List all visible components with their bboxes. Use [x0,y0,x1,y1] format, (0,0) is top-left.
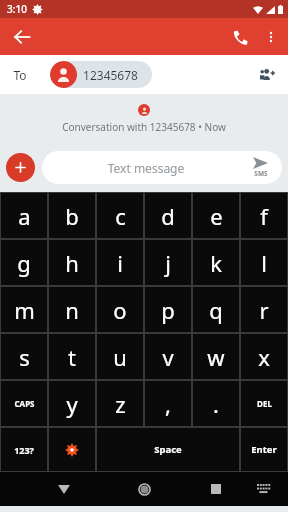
button[interactable]: Recent apps [200,473,232,505]
staticText: Text message [54,160,238,176]
button[interactable]: y [49,381,95,426]
button[interactable]: Switch keyboard [250,475,278,503]
staticText: b [65,201,79,231]
button[interactable]: g [1,240,47,285]
button[interactable]: x [241,334,287,379]
button[interactable]: d [145,193,191,238]
staticText: n [65,295,79,325]
staticText: w [207,342,225,372]
staticText: SMS [254,169,268,178]
staticText: m [14,295,35,325]
button[interactable]: Space [97,428,239,471]
button[interactable]: 12345678 [50,61,152,88]
button[interactable]: More options [256,22,286,52]
button[interactable]: h [49,240,95,285]
staticText: , [165,389,171,419]
button[interactable]: Attach [6,153,35,182]
button[interactable]: i [97,240,143,285]
staticText: s [19,342,30,372]
staticText: 123? [14,444,34,456]
staticText: k [210,248,222,278]
button[interactable]: Enter [241,428,287,471]
staticText: q [209,295,223,325]
button[interactable]: v [145,334,191,379]
staticText: CAPS [14,398,35,409]
staticText: . [213,389,219,419]
staticText: x [258,342,270,372]
button[interactable]: Keyboard settings [49,428,95,471]
button[interactable]: t [49,334,95,379]
button[interactable]: Back [6,21,38,53]
button[interactable]: Hide keyboard [48,473,80,505]
button[interactable]: b [49,193,95,238]
button[interactable]: Add people [252,60,282,90]
button[interactable]: a [1,193,47,238]
staticText: o [113,295,127,325]
button[interactable]: l [241,240,287,285]
staticText: 12345678 [83,67,138,83]
staticText: Enter [251,443,277,456]
staticText: c [115,201,126,231]
button[interactable]: CAPS [1,381,47,426]
button[interactable]: Call [224,21,256,53]
button[interactable]: Send SMS [238,151,282,184]
staticText: e [210,201,223,231]
button[interactable]: w [193,334,239,379]
staticText: p [161,295,175,325]
staticText: Conversation with 12345678 • Now [62,120,226,134]
button[interactable]: q [193,287,239,332]
button[interactable]: p [145,287,191,332]
staticText: f [260,201,268,231]
button[interactable]: z [97,381,143,426]
staticText: DEL [257,398,272,409]
staticText: y [66,389,78,419]
button[interactable]: Home [128,473,160,505]
button[interactable]: Text message [42,151,282,184]
staticText: j [165,248,171,278]
staticText: a [18,201,31,231]
staticText: l [261,248,267,278]
staticText: 3:10 [7,2,27,16]
button[interactable]: o [97,287,143,332]
staticText: Space [154,443,182,456]
button[interactable]: , [145,381,191,426]
button[interactable]: s [1,334,47,379]
staticText: t [68,342,76,372]
button[interactable]: m [1,287,47,332]
staticText: u [113,342,127,372]
button[interactable]: k [193,240,239,285]
staticText: h [65,248,79,278]
staticText: g [17,248,31,278]
staticText: d [161,201,175,231]
button[interactable]: j [145,240,191,285]
button[interactable]: e [193,193,239,238]
button[interactable]: DEL [241,381,287,426]
button[interactable]: u [97,334,143,379]
staticText: v [162,342,174,372]
button[interactable]: n [49,287,95,332]
button[interactable]: . [193,381,239,426]
staticText: r [259,295,269,325]
staticText: z [115,389,126,419]
staticText: To [13,67,27,83]
staticText: i [117,248,123,278]
button[interactable]: r [241,287,287,332]
button[interactable]: f [241,193,287,238]
button[interactable]: c [97,193,143,238]
button[interactable]: 123? [1,428,47,471]
